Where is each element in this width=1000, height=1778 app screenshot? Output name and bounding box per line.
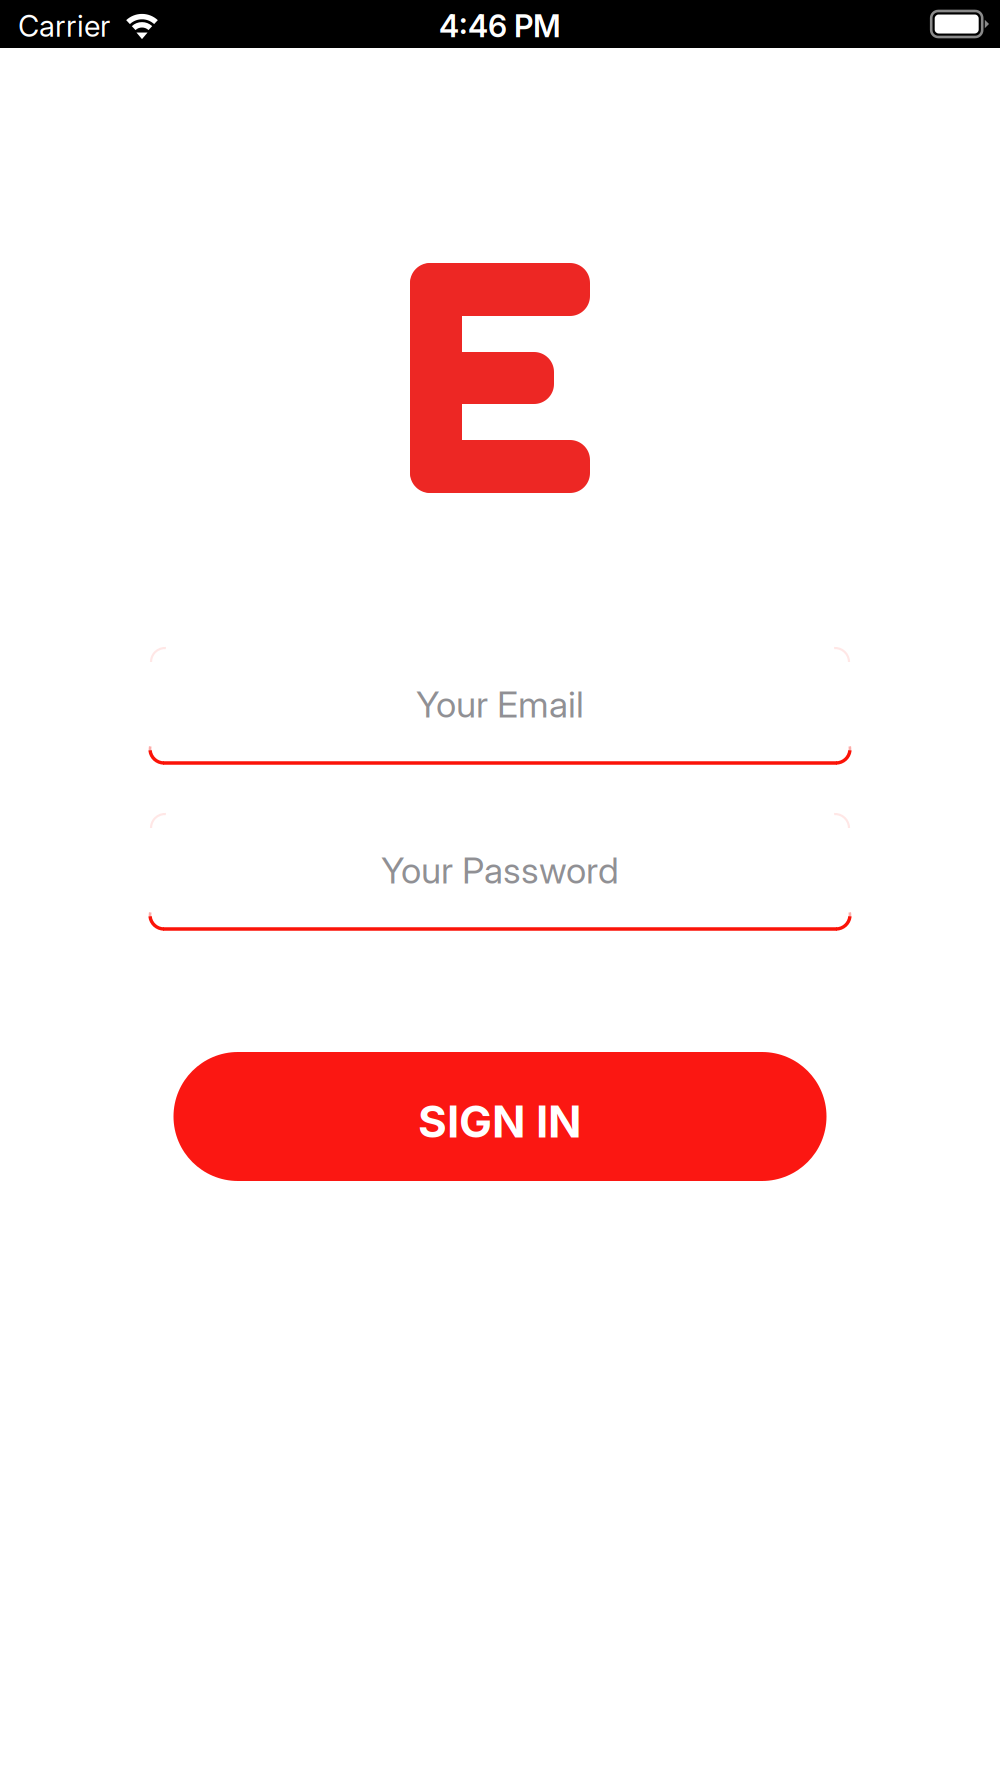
- button[interactable]: Your Password: [150, 813, 850, 930]
- button[interactable]: SIGN IN: [173, 1052, 826, 1181]
- button[interactable]: Your Email: [150, 647, 850, 764]
- staticText: Your Password: [381, 849, 619, 892]
- staticText: Carrier: [18, 8, 110, 44]
- staticText: SIGN IN: [418, 1095, 582, 1148]
- staticText: 4:46 PM: [439, 7, 561, 44]
- staticText: Your Email: [416, 683, 584, 726]
